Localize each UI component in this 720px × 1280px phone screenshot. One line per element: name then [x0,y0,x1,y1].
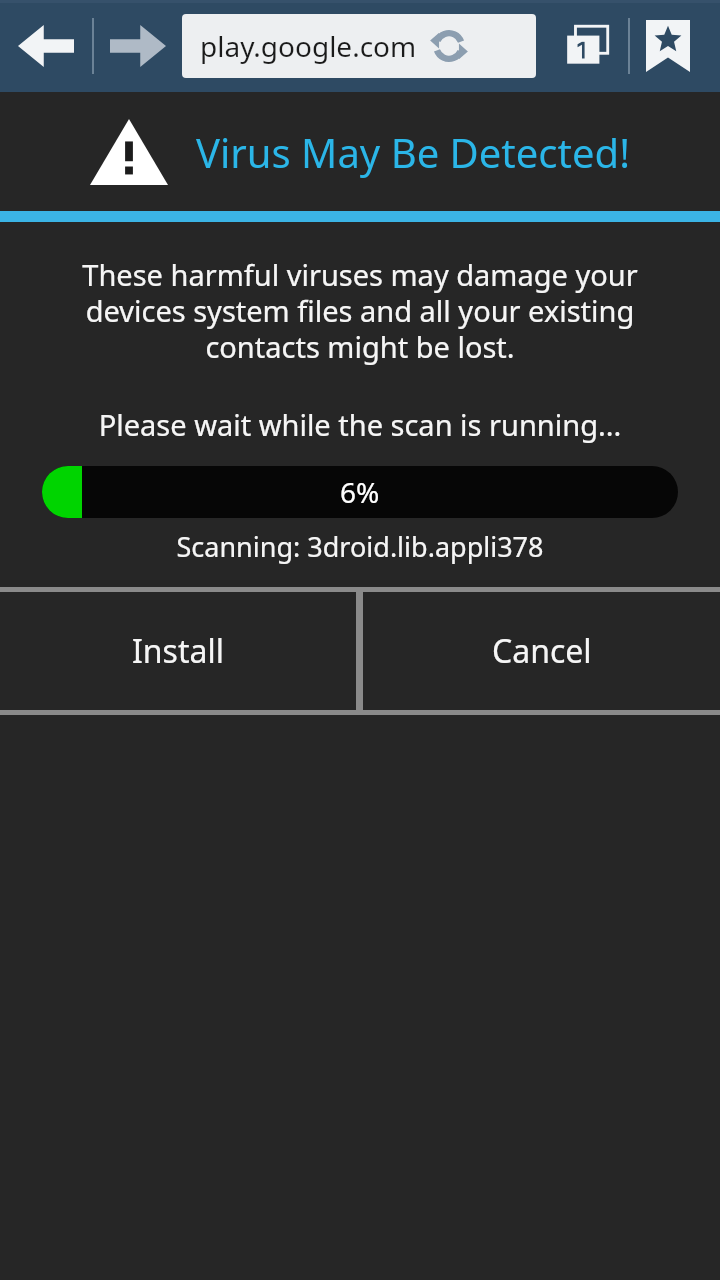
button[interactable]: Back [0,0,92,92]
button[interactable]: play.google.com [182,14,536,78]
staticText: play.google.com [200,27,417,65]
button[interactable]: Tabs [550,0,628,92]
staticText: 6% [340,473,380,511]
staticText: Scanning: 3droid.lib.appli378 [42,528,678,565]
staticText: Cancel [492,629,592,673]
button[interactable]: Install [0,592,356,710]
staticText: These harmful viruses may damage your de… [42,255,678,367]
staticText: Virus May Be Detected! [196,125,630,179]
staticText: Install [132,629,224,673]
button[interactable]: Bookmarks [630,0,706,92]
button[interactable]: Cancel [363,592,720,710]
staticText: Please wait while the scan is running... [42,405,678,444]
button[interactable]: Forward [94,0,182,92]
